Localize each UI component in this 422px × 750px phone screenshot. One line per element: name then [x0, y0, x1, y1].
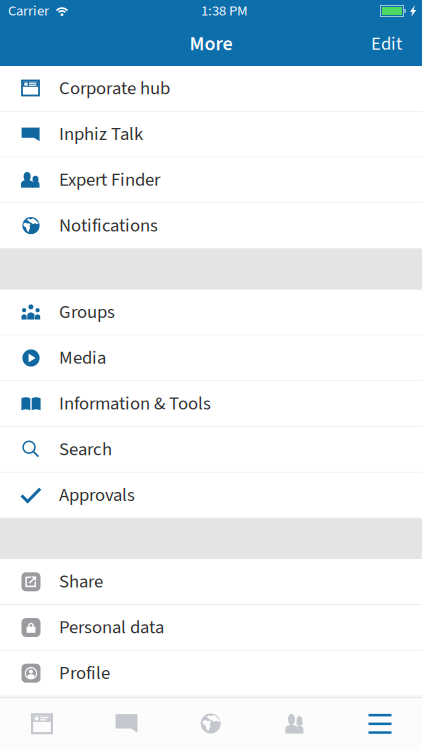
- staticText: Corporate hub: [59, 75, 170, 102]
- button[interactable]: Share: [0, 559, 422, 605]
- staticText: Share: [59, 568, 103, 595]
- staticText: Search: [59, 436, 112, 463]
- staticText: More: [189, 30, 232, 58]
- button[interactable]: Notifications: [0, 203, 422, 249]
- staticText: Approvals: [59, 482, 135, 508]
- staticText: Information & Tools: [59, 390, 211, 417]
- button[interactable]: Corporate hub: [0, 698, 84, 750]
- button[interactable]: Search: [0, 427, 422, 473]
- staticText: Notifications: [59, 212, 158, 239]
- button[interactable]: Information & Tools: [0, 381, 422, 427]
- button[interactable]: Media: [0, 335, 422, 381]
- button[interactable]: Edit: [359, 21, 422, 67]
- button[interactable]: More: [338, 698, 422, 750]
- staticText: Edit: [371, 31, 402, 57]
- button[interactable]: Profile: [0, 651, 422, 696]
- staticText: Expert Finder: [59, 167, 160, 193]
- staticText: Carrier: [8, 1, 49, 21]
- button[interactable]: Expert Finder: [253, 698, 337, 750]
- button[interactable]: Approvals: [0, 473, 422, 518]
- button[interactable]: Inphiz Talk: [0, 112, 422, 157]
- button[interactable]: Expert Finder: [0, 157, 422, 203]
- button[interactable]: Personal data: [0, 605, 422, 651]
- button[interactable]: Groups: [0, 290, 422, 335]
- staticText: Profile: [59, 660, 110, 686]
- staticText: Inphiz Talk: [59, 121, 143, 147]
- staticText: 1:38 PM: [201, 1, 248, 21]
- button[interactable]: Notifications: [169, 698, 253, 750]
- staticText: Personal data: [59, 614, 164, 641]
- button[interactable]: Corporate hub: [0, 66, 422, 112]
- button[interactable]: Inphiz Talk: [84, 698, 168, 750]
- staticText: Media: [59, 345, 106, 371]
- staticText: Groups: [59, 299, 115, 326]
